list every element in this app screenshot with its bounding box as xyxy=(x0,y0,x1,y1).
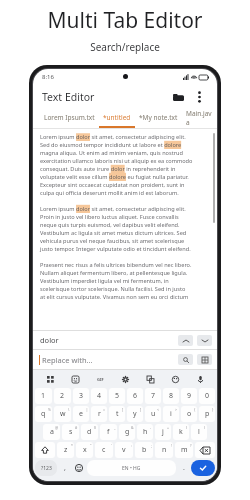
staticText: t xyxy=(116,409,119,419)
button[interactable]: z xyxy=(57,442,74,458)
button[interactable]: GIF xyxy=(93,372,107,386)
button[interactable]: 5 xyxy=(109,388,125,404)
button[interactable]: Done xyxy=(191,460,215,476)
staticText: m xyxy=(181,445,188,455)
button[interactable]: n xyxy=(155,442,173,458)
staticText: [ xyxy=(122,407,124,412)
button[interactable]: m xyxy=(175,442,193,458)
staticText: z xyxy=(64,445,68,455)
staticText: y xyxy=(133,409,137,419)
button[interactable]: c xyxy=(95,442,113,458)
button[interactable]: *untitled xyxy=(103,113,131,122)
button[interactable]: 0 xyxy=(199,388,215,404)
button[interactable]: g xyxy=(119,424,135,440)
staticText: ' xyxy=(111,443,112,448)
button[interactable]: Replace xyxy=(178,354,193,365)
button[interactable]: f xyxy=(100,424,117,440)
button[interactable]: 1 xyxy=(35,388,52,404)
button[interactable]: EN • HG xyxy=(87,460,176,476)
button[interactable]: Clipboard xyxy=(43,372,57,386)
button[interactable]: 7 xyxy=(145,388,161,404)
staticText: Main.java xyxy=(186,109,213,126)
button[interactable]: y xyxy=(127,406,143,422)
button[interactable]: 9 xyxy=(181,388,197,404)
button[interactable]: s xyxy=(62,424,79,440)
staticText: q xyxy=(41,409,46,419)
staticText: # xyxy=(75,425,78,430)
button[interactable]: j xyxy=(155,424,171,440)
button[interactable]: Replace all xyxy=(197,354,212,365)
button[interactable]: Voice input xyxy=(193,372,207,386)
button[interactable]: ?123 xyxy=(35,460,57,476)
button[interactable]: u xyxy=(145,406,161,422)
staticText: w xyxy=(60,409,66,419)
button[interactable]: a xyxy=(43,424,60,440)
button[interactable]: Next match xyxy=(197,335,212,346)
staticText: ?123 xyxy=(41,465,52,472)
button[interactable]: Open file xyxy=(169,88,187,106)
staticText: < xyxy=(157,407,160,412)
staticText: Lorem Ipsum.txt xyxy=(44,113,95,122)
staticText: \ xyxy=(68,407,70,412)
button[interactable]: Lorem Ipsum.txt xyxy=(44,113,95,122)
button[interactable]: 4 xyxy=(91,388,107,404)
button[interactable]: 6 xyxy=(127,388,143,404)
button[interactable]: Themes xyxy=(168,372,182,386)
button[interactable]: Stickers xyxy=(68,372,82,386)
button[interactable]: 2 xyxy=(54,388,71,404)
button[interactable]: Main.java xyxy=(186,109,213,126)
button[interactable]: v xyxy=(115,442,133,458)
button[interactable]: t xyxy=(109,406,125,422)
button[interactable]: d xyxy=(81,424,98,440)
button[interactable]: o xyxy=(181,406,197,422)
button[interactable]: Settings xyxy=(118,372,132,386)
staticText: @ xyxy=(55,425,59,430)
staticText: l xyxy=(198,427,200,437)
button[interactable]: . xyxy=(178,460,189,476)
staticText: *My note.txt xyxy=(139,113,178,122)
button[interactable]: p xyxy=(199,406,215,422)
button[interactable]: h xyxy=(137,424,153,440)
button[interactable]: 8 xyxy=(163,388,179,404)
button[interactable]: l xyxy=(191,424,207,440)
button[interactable]: Previous match xyxy=(178,335,193,346)
button[interactable]: k xyxy=(173,424,189,440)
button[interactable]: x xyxy=(76,442,93,458)
button[interactable]: w xyxy=(54,406,71,422)
staticText: " xyxy=(90,443,92,448)
staticText: GIF xyxy=(97,377,104,382)
staticText: 6 xyxy=(133,391,138,401)
staticText: $ xyxy=(94,425,97,430)
staticText: n xyxy=(162,445,167,455)
staticText: 8 xyxy=(169,391,174,401)
staticText: : xyxy=(131,443,132,448)
staticText: *untitled xyxy=(103,113,131,122)
staticText: 0 xyxy=(205,391,210,401)
staticText: a xyxy=(50,427,54,437)
button[interactable]: *My note.txt xyxy=(139,113,178,122)
button[interactable]: Translate xyxy=(143,372,157,386)
staticText: v xyxy=(122,445,126,455)
button[interactable]: Shift xyxy=(35,442,55,458)
staticText: - xyxy=(150,425,152,430)
button[interactable]: q xyxy=(35,406,52,422)
button[interactable]: b xyxy=(135,442,153,458)
button[interactable]: r xyxy=(91,406,107,422)
staticText: ; xyxy=(151,443,152,448)
staticText: c xyxy=(102,445,106,455)
staticText: * xyxy=(71,443,73,448)
button[interactable]: Backspace xyxy=(195,442,215,458)
button[interactable]: i xyxy=(163,406,179,422)
staticText: _ xyxy=(114,425,116,430)
staticText: ) xyxy=(204,425,206,430)
staticText: b xyxy=(142,445,147,455)
button[interactable]: e xyxy=(73,406,89,422)
button[interactable]: More options xyxy=(190,88,208,106)
button[interactable]: 3 xyxy=(73,388,89,404)
button[interactable]: , xyxy=(59,460,70,476)
staticText: s xyxy=(69,427,73,437)
staticText: g xyxy=(125,427,130,437)
button[interactable]: Emoji xyxy=(72,460,85,476)
staticText: & xyxy=(131,425,134,430)
staticText: | xyxy=(86,407,88,412)
